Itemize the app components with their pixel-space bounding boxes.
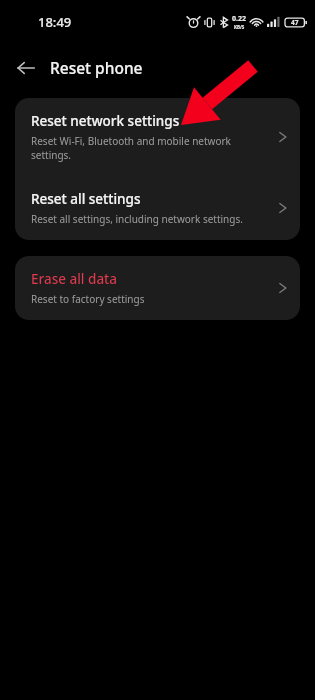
staticText: 0.22 (232, 14, 246, 24)
button[interactable]: Erase all data (15, 256, 300, 320)
staticText: Reset Wi-Fi, Bluetooth and mobile networ… (31, 134, 270, 162)
button[interactable]: Reset all settings (15, 176, 300, 240)
staticText: KB/S (234, 24, 245, 30)
staticText: 47 (291, 18, 299, 27)
staticText: Reset phone (50, 57, 143, 78)
button[interactable]: Reset network settings (15, 98, 300, 176)
staticText: Reset to factory settings (31, 292, 145, 306)
button[interactable]: Back (10, 52, 42, 84)
staticText: Erase all data (31, 270, 118, 288)
staticText: Reset all settings, including network se… (31, 212, 243, 226)
staticText: Reset all settings (31, 190, 141, 208)
staticText: 18:49 (38, 13, 72, 31)
staticText: Reset network settings (31, 112, 180, 130)
